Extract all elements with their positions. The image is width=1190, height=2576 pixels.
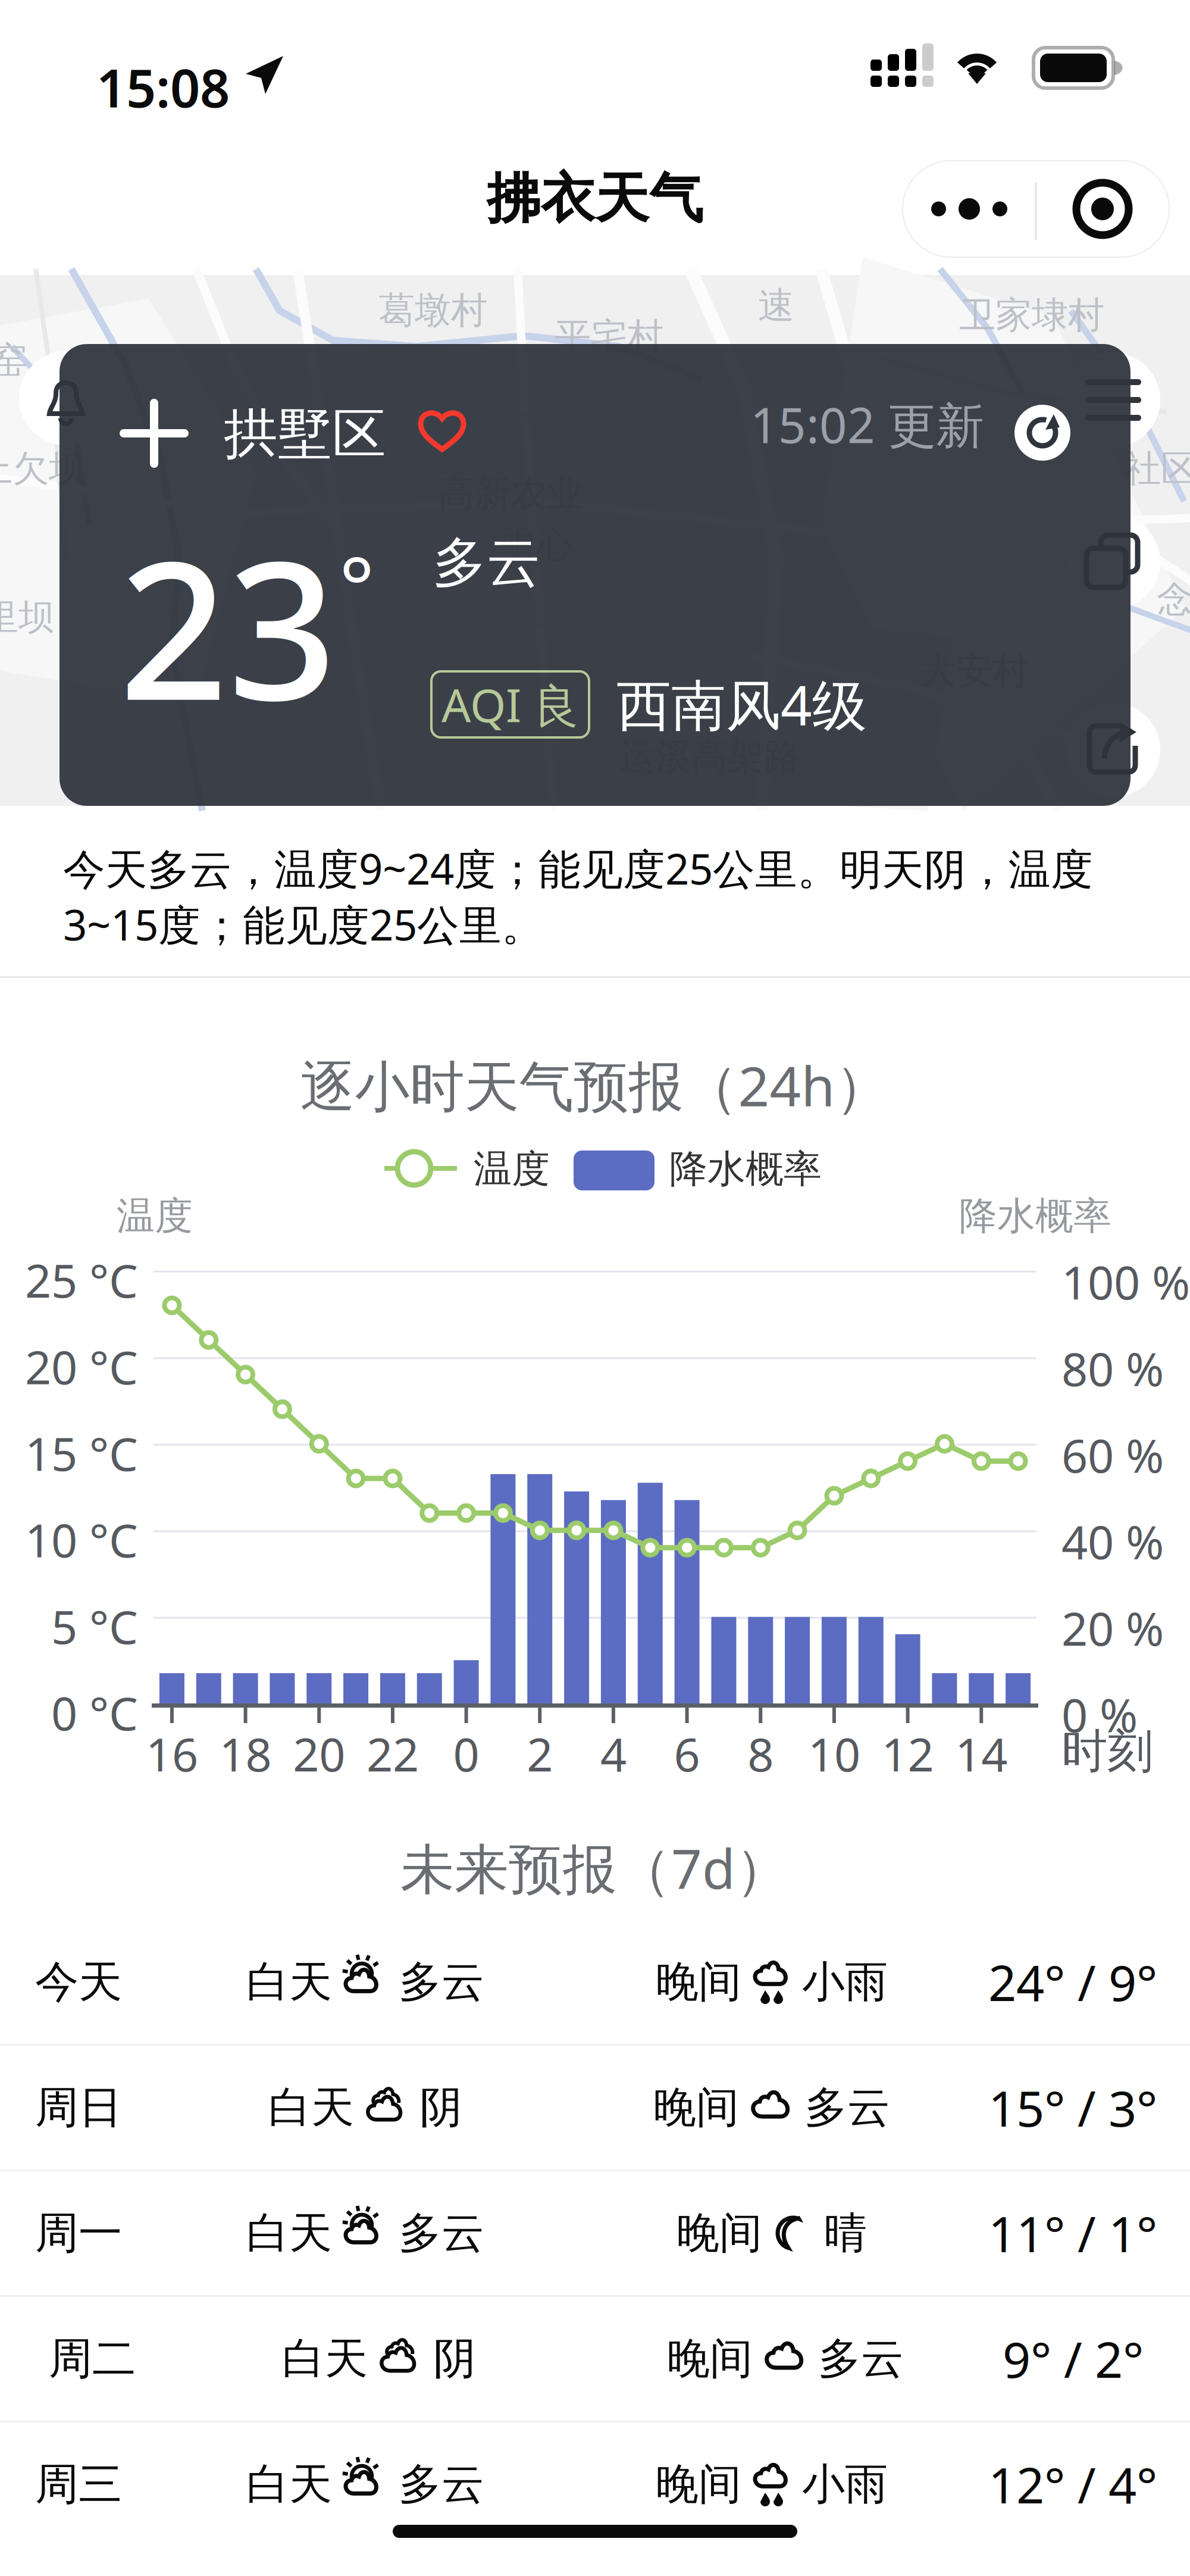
staticText: 23 (119, 499, 337, 752)
staticText: 今天 (35, 1955, 122, 2009)
staticText: 葛墩村 (378, 288, 487, 333)
staticText: 周日 (35, 2081, 122, 2134)
button[interactable]: 今天 (0, 1920, 1190, 2044)
staticText: 白天 (246, 2207, 332, 2259)
staticText: AQI 良 (441, 674, 579, 735)
staticText: 窑 (0, 338, 27, 383)
staticText: 拱墅区 (224, 401, 386, 467)
staticText: 15 °C (25, 1422, 138, 1484)
staticText: 上欠坝 (0, 446, 85, 491)
staticText: 4 (600, 1723, 626, 1784)
staticText: 小雨 (802, 1956, 888, 2008)
staticText: 12 (882, 1723, 934, 1784)
staticText: 阴 (433, 2332, 476, 2385)
staticText: 16 (146, 1723, 198, 1784)
staticText: 多云 (433, 530, 541, 596)
staticText: 80 % (1061, 1338, 1164, 1399)
staticText: 24° / 9° (988, 1949, 1157, 2015)
button[interactable]: Map layers (1066, 515, 1160, 609)
staticText: 周三 (35, 2458, 122, 2511)
button[interactable]: Share (1066, 703, 1160, 797)
staticText: 社区 (1125, 446, 1190, 491)
staticText: 14 (955, 1723, 1008, 1784)
staticText: 里坝 (0, 595, 55, 640)
staticText: 20 (293, 1723, 345, 1784)
staticText: 晚间 (656, 1956, 741, 2008)
staticText: 多云 (804, 2081, 890, 2134)
staticText: 12° / 4° (988, 2452, 1157, 2517)
staticText: 逐小时天气预报（24h） (300, 1049, 890, 1121)
staticText: 阴 (419, 2081, 462, 2134)
staticText: 22 (366, 1723, 419, 1784)
staticText: 时刻 (1061, 1723, 1153, 1780)
staticText: 念 (1157, 577, 1190, 622)
staticText: 未来预报（7d） (400, 1832, 790, 1904)
button[interactable]: Favourite (417, 406, 467, 454)
staticText: 小雨 (802, 2458, 888, 2511)
staticText: 3~15度；能见度25公里。 (63, 896, 544, 952)
button[interactable]: More (903, 161, 1036, 257)
staticText: 11° / 1° (988, 2200, 1157, 2266)
staticText: 晚间 (667, 2332, 753, 2385)
staticText: 多云 (399, 2458, 484, 2511)
staticText: 15:08 (96, 52, 230, 122)
staticText: 5 °C (51, 1595, 138, 1657)
staticText: 10 °C (25, 1509, 138, 1570)
staticText: 100 % (1061, 1251, 1190, 1312)
staticText: 9° / 2° (1003, 2326, 1144, 2391)
staticText: 拂衣天气 (487, 165, 703, 232)
staticText: 多云 (818, 2332, 904, 2385)
staticText: 10 (808, 1723, 860, 1784)
staticText: 白天 (268, 2081, 354, 2134)
staticText: 0 (453, 1723, 479, 1784)
button[interactable]: 周日 (0, 2046, 1190, 2169)
staticText: 降水概率 (959, 1193, 1111, 1240)
staticText: 60 % (1061, 1424, 1164, 1485)
staticText: 白天 (246, 2458, 332, 2511)
staticText: ° (339, 530, 374, 640)
button[interactable]: 周一 (0, 2171, 1190, 2295)
staticText: 6 (674, 1723, 700, 1784)
staticText: 晚间 (653, 2081, 739, 2134)
staticText: 15:02 更新 (750, 392, 984, 457)
staticText: 2 (527, 1723, 553, 1784)
button[interactable]: Alerts (19, 351, 113, 445)
staticText: 0 °C (51, 1682, 138, 1743)
staticText: 晚间 (677, 2207, 762, 2259)
staticText: 周一 (35, 2206, 122, 2260)
staticText: 白天 (282, 2332, 368, 2385)
button[interactable]: Add city (118, 398, 190, 469)
staticText: 0 % (1061, 1684, 1138, 1745)
staticText: 多云 (399, 2207, 484, 2259)
staticText: 平宅村 (555, 314, 663, 359)
staticText: 晴 (824, 2207, 867, 2259)
staticText: 晚间 (656, 2458, 741, 2511)
button[interactable]: Menu (1066, 353, 1160, 447)
staticText: 卫家埭村 (959, 293, 1104, 338)
staticText: 8 (747, 1723, 774, 1784)
staticText: 中心 (501, 523, 574, 567)
staticText: 20 % (1061, 1597, 1164, 1658)
staticText: 多云 (399, 1956, 484, 2008)
staticText: 20 °C (25, 1336, 138, 1397)
staticText: 降水概率 (669, 1146, 822, 1193)
staticText: 18 (219, 1723, 272, 1784)
button[interactable]: 周二 (0, 2297, 1190, 2421)
staticText: 温度 (474, 1146, 550, 1193)
staticText: 周二 (49, 2332, 136, 2386)
staticText: 白天 (246, 1956, 332, 2008)
staticText: 温度 (117, 1193, 193, 1240)
staticText: 25 °C (25, 1249, 138, 1310)
staticText: 西南风4级 (616, 668, 867, 741)
button[interactable]: Refresh (1014, 405, 1070, 461)
button[interactable]: Close mini program (1036, 161, 1169, 257)
staticText: 速 (758, 283, 794, 328)
button[interactable]: 周三 (0, 2422, 1190, 2546)
staticText: 15° / 3° (988, 2075, 1157, 2140)
staticText: 今天多云，温度9~24度；能见度25公里。明天阴，温度 (63, 840, 1093, 896)
staticText: 40 % (1061, 1511, 1164, 1572)
